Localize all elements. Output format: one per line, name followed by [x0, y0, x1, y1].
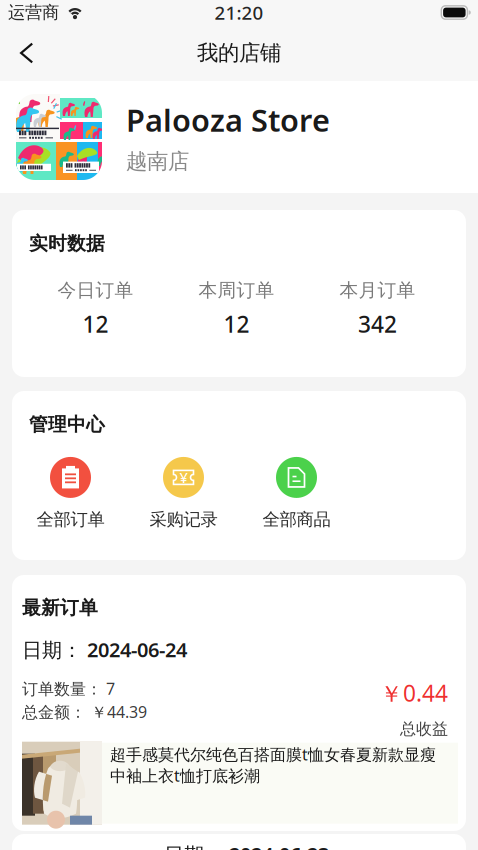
- staticText: 全部商品: [262, 509, 330, 530]
- button[interactable]: ¥: [127, 457, 240, 530]
- staticText: 日期： 2024-06-23: [164, 841, 329, 850]
- staticText: 我的店铺: [197, 40, 281, 66]
- staticText: Palooza Store: [126, 99, 330, 140]
- staticText: 本周订单: [198, 279, 274, 302]
- staticText: 运营商: [8, 2, 59, 23]
- staticText: 本月订单: [339, 279, 415, 302]
- staticText: 越南店: [126, 148, 189, 174]
- button[interactable]: 全部商品: [240, 457, 353, 530]
- staticText: 日期： 2024-06-24: [22, 636, 187, 663]
- staticText: 总金额： ￥44.39: [22, 701, 147, 722]
- staticText: 最新订单: [22, 596, 98, 619]
- staticText: 管理中心: [29, 413, 105, 436]
- staticText: 12: [82, 309, 108, 339]
- button[interactable]: 全部订单: [14, 457, 127, 530]
- staticText: 实时数据: [29, 232, 105, 255]
- button[interactable]: 返回: [0, 28, 47, 77]
- staticText: 21:20: [214, 0, 263, 25]
- staticText: 总收益: [400, 719, 448, 739]
- button[interactable]: 超手感莫代尔纯色百搭面膜t恤女春夏新款显瘦中袖上衣t恤打底衫潮: [22, 743, 458, 824]
- staticText: ¥: [179, 468, 187, 487]
- staticText: 超手感莫代尔纯色百搭面膜t恤女春夏新款显瘦中袖上衣t恤打底衫潮: [110, 744, 436, 786]
- staticText: 342: [358, 309, 397, 339]
- staticText: 全部订单: [36, 509, 104, 530]
- staticText: 12: [223, 309, 249, 339]
- staticText: 订单数量： 7: [22, 678, 115, 699]
- staticText: 今日订单: [57, 279, 133, 302]
- staticText: ￥0.44: [380, 678, 448, 708]
- staticText: 采购记录: [149, 509, 217, 530]
